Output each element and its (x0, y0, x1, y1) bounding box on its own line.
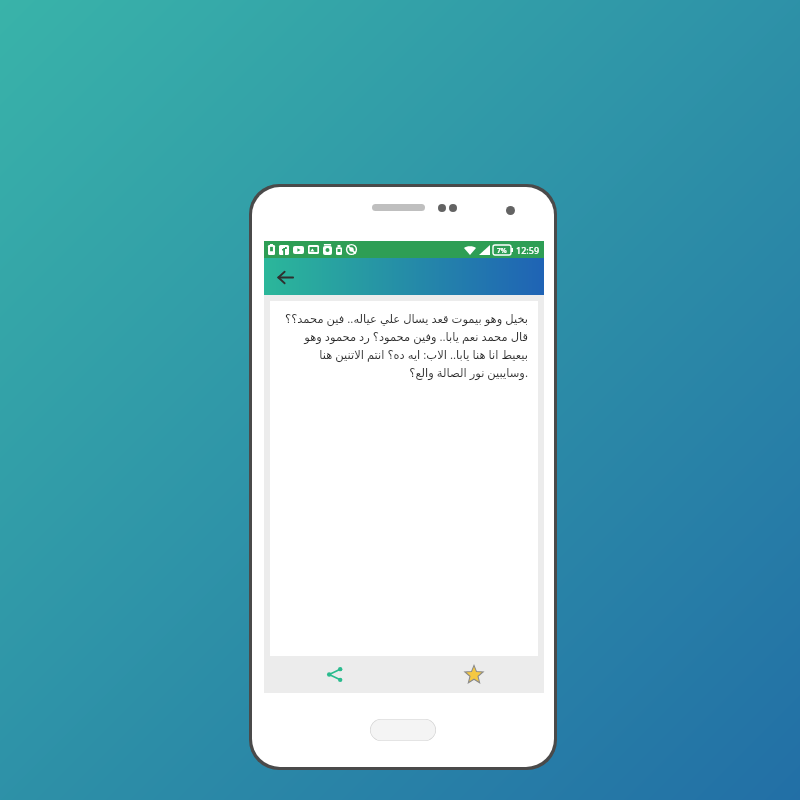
button[interactable]: Favorite (404, 656, 544, 693)
button[interactable]: Back (270, 262, 300, 292)
button[interactable]: Share (264, 656, 404, 693)
staticText: بخيل وهو بيموت قعد يسال علي عياله.. فين … (280, 311, 528, 381)
button[interactable]: Home (370, 719, 436, 741)
staticText: 7% (497, 246, 507, 255)
staticText: 12:59 (516, 244, 540, 256)
